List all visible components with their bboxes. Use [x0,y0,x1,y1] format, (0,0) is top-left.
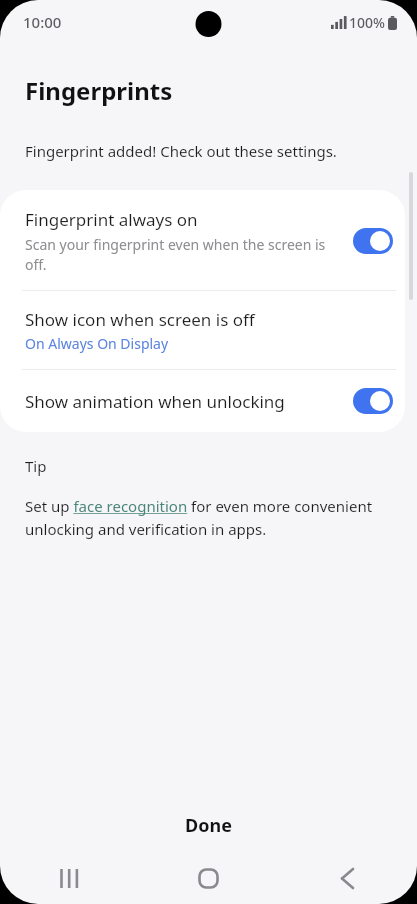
button[interactable]: Set up face recognition for even more co… [25,496,377,539]
button[interactable]: Show animation when unlocking [0,370,405,432]
staticText: Fingerprints [25,74,173,107]
button[interactable]: Back [278,852,417,904]
staticText: 100% [349,13,385,32]
staticText: Fingerprint always on [25,208,198,231]
button[interactable]: Recent apps [0,852,139,904]
button[interactable]: Fingerprint always on [0,190,405,290]
staticText: On Always On Display [25,334,169,353]
staticText: Tip [25,456,47,476]
button[interactable]: Done [0,799,417,852]
staticText: Done [185,813,232,838]
button[interactable]: Show icon when screen is off [0,291,405,369]
staticText: Show icon when screen is off [25,308,255,331]
staticText: Fingerprint added! Check out these setti… [25,141,337,161]
button[interactable]: Home [139,852,278,904]
button[interactable]: Show animation when unlocking [353,388,393,414]
button[interactable]: Fingerprint always on [353,228,393,254]
staticText: 10:00 [23,12,62,32]
staticText: Scan your fingerprint even when the scre… [25,235,341,274]
staticText: Show animation when unlocking [25,390,341,413]
